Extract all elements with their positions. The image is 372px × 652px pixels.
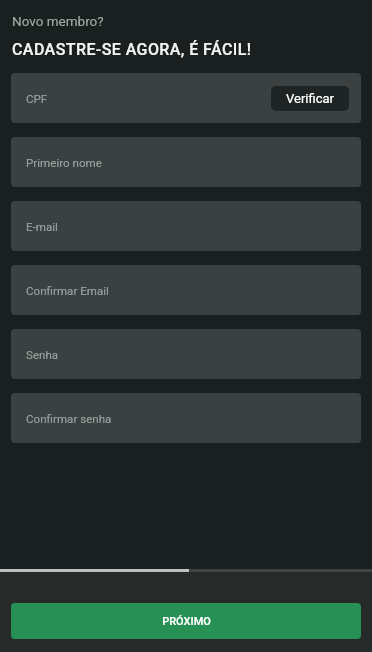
staticText: CPF: [26, 92, 48, 106]
button[interactable]: Confirmar Email: [11, 265, 361, 315]
staticText: Confirmar senha: [26, 412, 112, 426]
button[interactable]: Primeiro nome: [11, 137, 361, 187]
button[interactable]: Senha: [11, 329, 361, 379]
staticText: CADASTRE-SE AGORA, É FÁCIL!: [12, 40, 252, 59]
button[interactable]: PRÓXIMO: [11, 603, 361, 639]
staticText: Novo membro?: [12, 13, 104, 29]
button[interactable]: CPF: [11, 73, 361, 123]
button[interactable]: Confirmar senha: [11, 393, 361, 443]
other: Progresso do cadastro: [0, 569, 372, 572]
staticText: PRÓXIMO: [162, 615, 211, 628]
staticText: Verificar: [286, 91, 334, 106]
staticText: Primeiro nome: [26, 156, 102, 170]
staticText: Confirmar Email: [26, 284, 109, 298]
staticText: Senha: [26, 348, 59, 362]
button[interactable]: E-mail: [11, 201, 361, 251]
staticText: E-mail: [26, 220, 58, 234]
button[interactable]: Verificar: [271, 86, 349, 111]
